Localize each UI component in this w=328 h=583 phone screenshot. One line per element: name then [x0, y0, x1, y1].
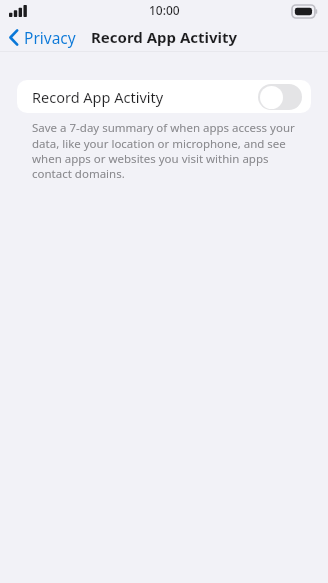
button[interactable]: Record App Activity	[17, 80, 311, 113]
button[interactable]: Record App Activity toggle, off	[258, 84, 302, 110]
staticText: Record App Activity	[91, 27, 238, 47]
staticText: Record App Activity	[32, 87, 258, 107]
staticText: 10:00	[149, 2, 180, 18]
button[interactable]: Privacy	[0, 24, 84, 51]
staticText: Privacy	[24, 27, 76, 48]
staticText: Save a 7-day summary of when apps access…	[32, 120, 304, 181]
